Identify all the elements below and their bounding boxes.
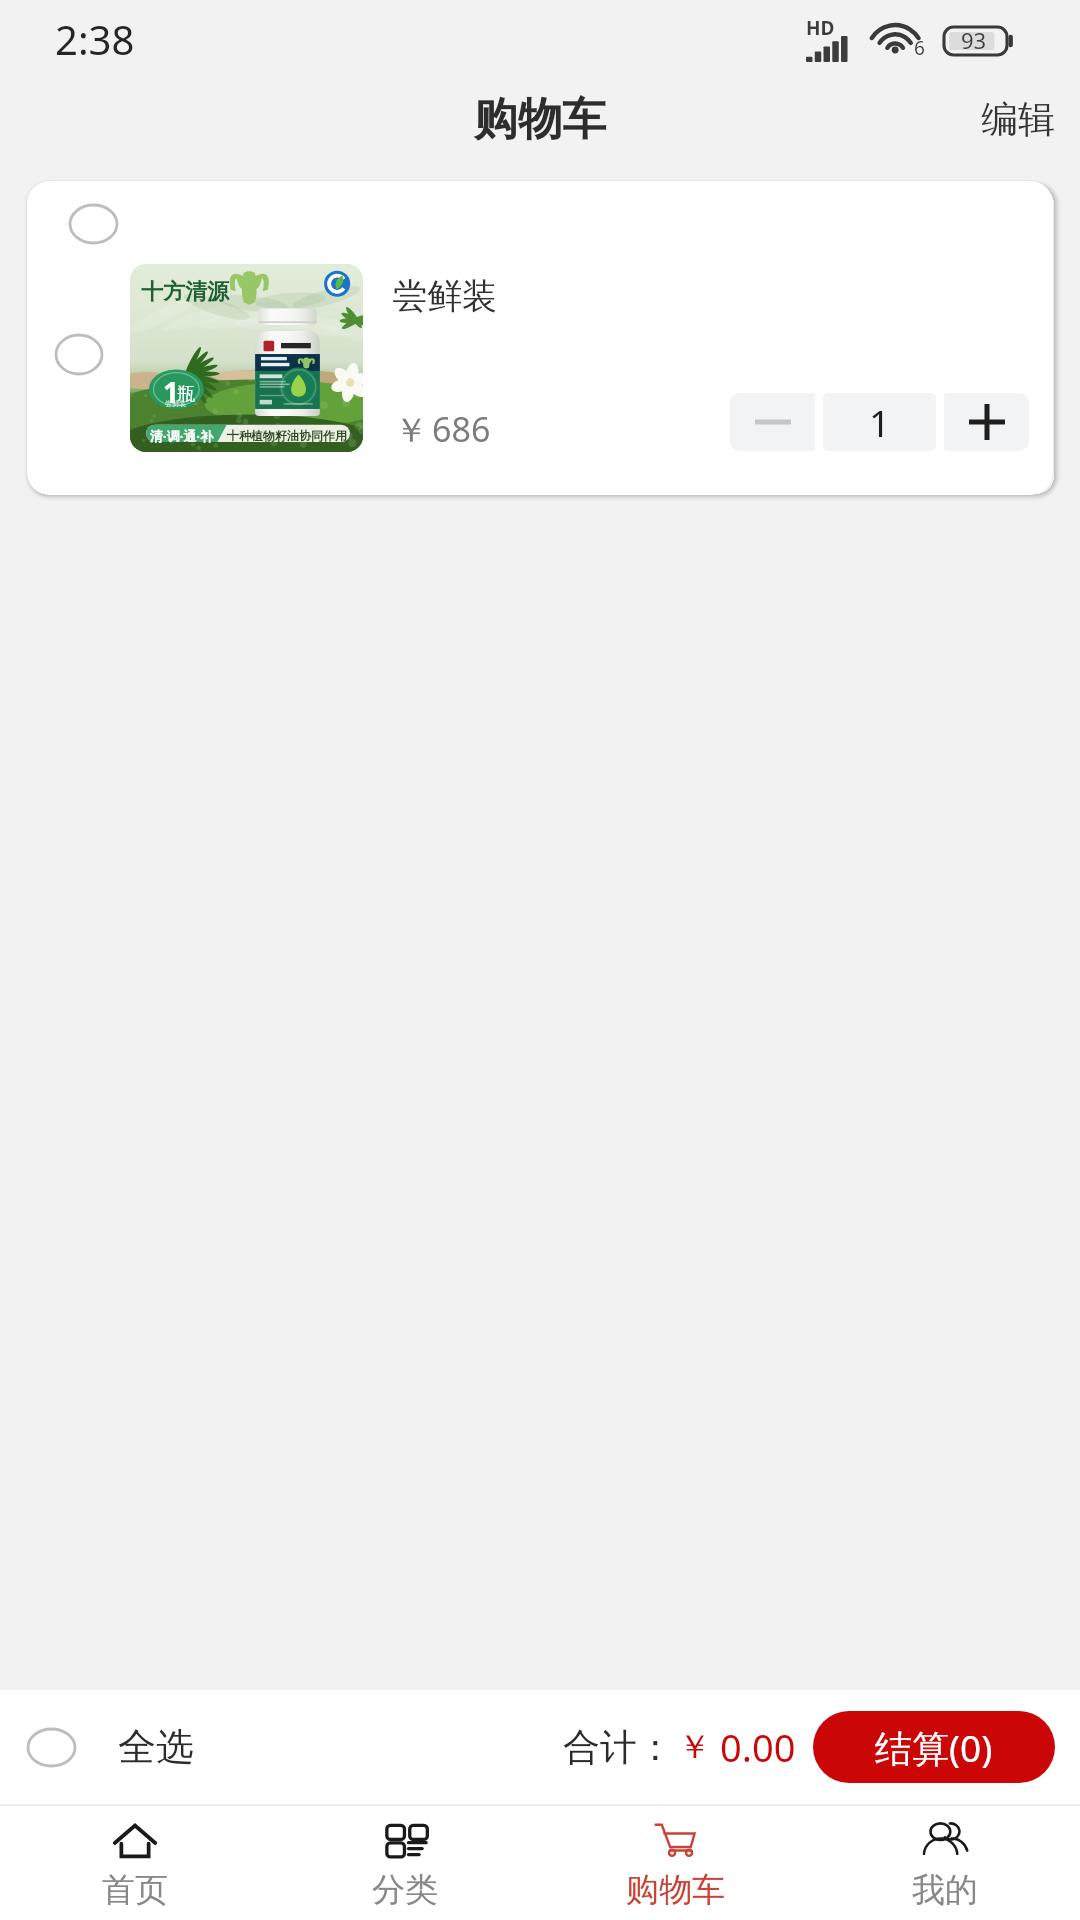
staticText: 1: [163, 373, 180, 411]
staticText: 2:38: [55, 12, 135, 66]
staticText: 瓶: [177, 383, 195, 406]
button[interactable]: 我的: [810, 1806, 1080, 1920]
staticText: 编辑: [981, 96, 1055, 143]
staticText: ￥: [678, 1726, 711, 1768]
staticText: 我的: [912, 1869, 978, 1911]
button[interactable]: 分类: [270, 1806, 540, 1920]
staticText: 686: [432, 406, 491, 452]
staticText: 十方清源: [141, 278, 229, 306]
staticText: 清·调·通·补: [150, 427, 213, 445]
staticText: 1: [869, 397, 891, 447]
staticText: 尝鲜装: [392, 274, 497, 318]
button[interactable]: Product image: [130, 264, 363, 452]
button[interactable]: Increase quantity: [944, 393, 1029, 451]
staticText: 尝鲜装: [165, 399, 186, 408]
staticText: 0.00: [720, 1721, 796, 1773]
staticText: 十种植物籽油协同作用: [227, 428, 347, 443]
button[interactable]: 编辑: [956, 82, 1080, 157]
staticText: 购物车: [626, 1869, 725, 1911]
button[interactable]: Select item: [56, 335, 102, 374]
staticText: 全选: [118, 1723, 194, 1771]
staticText: HD: [806, 15, 835, 41]
button[interactable]: 首页: [0, 1806, 270, 1920]
button[interactable]: Decrease quantity: [730, 393, 815, 451]
button[interactable]: 1: [823, 393, 936, 451]
staticText: 合计：: [563, 1724, 674, 1771]
staticText: 分类: [372, 1869, 438, 1911]
button[interactable]: 全选: [0, 1723, 214, 1771]
staticText: 6: [914, 35, 925, 61]
button[interactable]: Select store: [70, 205, 117, 243]
button[interactable]: 结算(0): [813, 1711, 1055, 1783]
staticText: 首页: [102, 1869, 168, 1911]
staticText: 结算(0): [875, 1722, 993, 1773]
button[interactable]: 购物车: [540, 1806, 810, 1920]
staticText: ￥: [394, 409, 428, 452]
staticText: 购物车: [474, 92, 606, 147]
staticText: 93: [961, 25, 987, 55]
